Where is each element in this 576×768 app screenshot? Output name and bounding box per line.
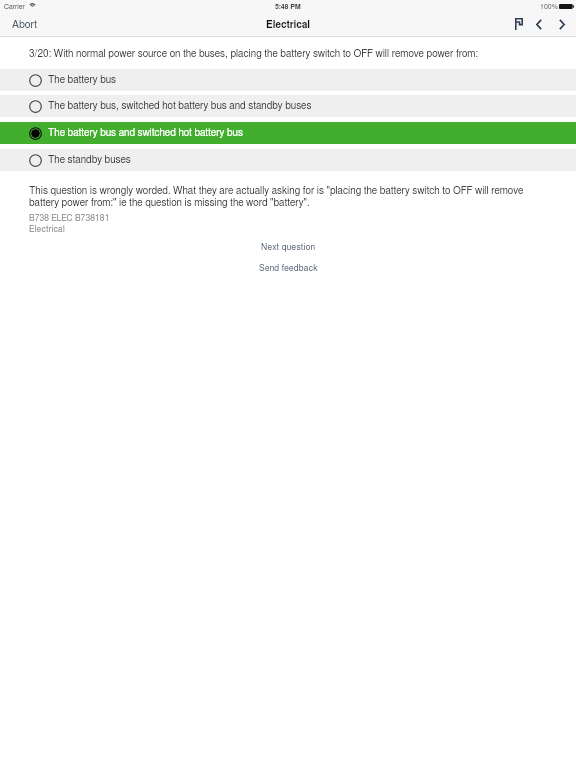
button[interactable]: The battery bus and switched hot battery… bbox=[0, 122, 576, 144]
staticText: Abort bbox=[12, 20, 37, 31]
staticText: This question is wrongly worded. What th… bbox=[29, 186, 529, 208]
staticText: Carrier bbox=[4, 3, 25, 10]
button[interactable]: Flag bbox=[507, 12, 531, 36]
staticText: The battery bus bbox=[48, 75, 117, 85]
staticText: 3/20: With normal power source on the bu… bbox=[29, 49, 479, 59]
button[interactable]: Next question bbox=[550, 12, 574, 36]
staticText: Send feedback bbox=[259, 264, 318, 273]
staticText: The standby buses bbox=[48, 155, 131, 165]
staticText: Electrical bbox=[266, 20, 310, 30]
button[interactable]: The standby buses bbox=[0, 149, 576, 171]
staticText: 100% bbox=[540, 3, 558, 10]
button[interactable]: Abort bbox=[8, 18, 41, 33]
staticText: B738 ELEC B738181 bbox=[29, 214, 110, 223]
staticText: The battery bus, switched hot battery bu… bbox=[48, 101, 312, 111]
button[interactable]: Previous question bbox=[527, 12, 551, 36]
staticText: Next question bbox=[261, 243, 316, 252]
button[interactable]: The battery bus bbox=[0, 69, 576, 91]
staticText: Electrical bbox=[29, 225, 65, 234]
button[interactable]: The battery bus, switched hot battery bu… bbox=[0, 95, 576, 117]
staticText: 5:48 PM bbox=[275, 3, 301, 10]
button[interactable]: Next question bbox=[0, 241, 576, 254]
staticText: The battery bus and switched hot battery… bbox=[48, 128, 243, 138]
button[interactable]: Send feedback bbox=[0, 262, 576, 275]
